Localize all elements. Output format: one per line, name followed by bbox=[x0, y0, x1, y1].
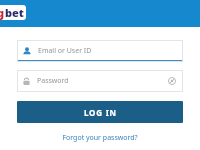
staticText: g bbox=[0, 5, 5, 20]
button[interactable]: Show password bbox=[163, 72, 181, 90]
button[interactable]: Email or User ID bbox=[17, 40, 183, 62]
button[interactable]: LOG IN bbox=[17, 101, 183, 123]
staticText: Password bbox=[37, 76, 69, 86]
button[interactable]: Password bbox=[17, 70, 183, 92]
button[interactable]: Logo bbox=[0, 5, 26, 20]
button[interactable]: Forgot your password? bbox=[58, 132, 142, 144]
staticText: LOG IN bbox=[84, 107, 117, 118]
staticText: Forgot your password? bbox=[62, 133, 138, 143]
staticText: bet bbox=[5, 5, 24, 20]
staticText: Email or User ID bbox=[38, 46, 92, 56]
